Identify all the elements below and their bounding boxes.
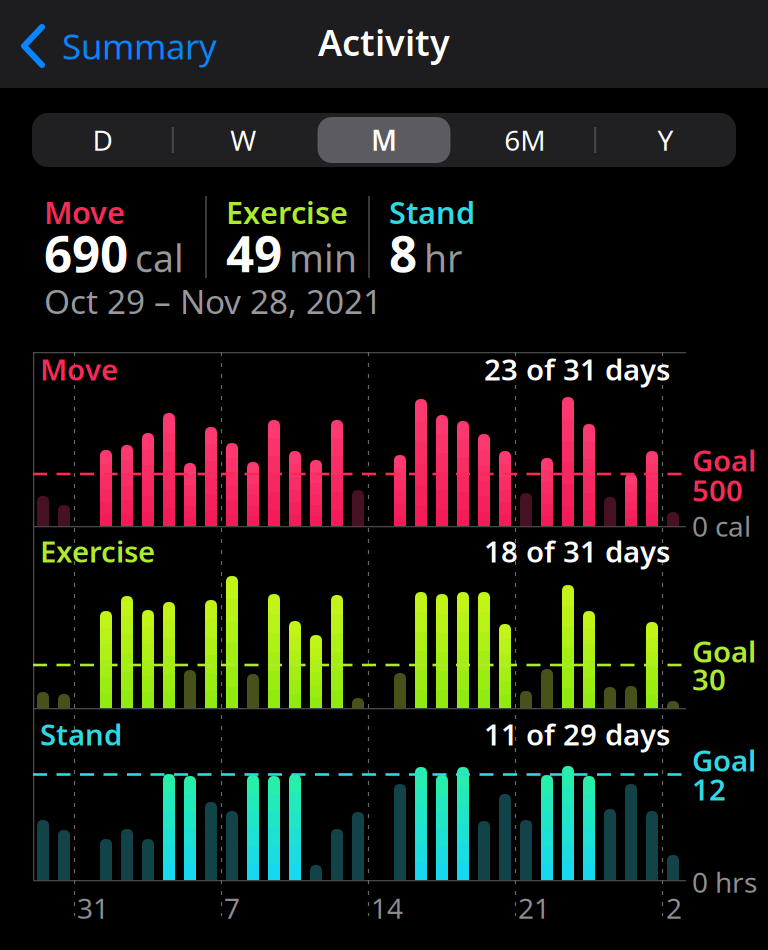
- staticText: 49: [226, 220, 282, 286]
- staticText: 11 of 29 days: [484, 714, 670, 753]
- button[interactable]: W: [173, 113, 314, 167]
- staticText: Summary: [62, 23, 217, 69]
- staticText: Move: [40, 349, 118, 388]
- staticText: hr: [424, 233, 462, 282]
- staticText: Move: [44, 192, 125, 232]
- staticText: Exercise: [40, 531, 155, 570]
- staticText: 30: [692, 659, 726, 698]
- button[interactable]: Back to Summary: [20, 2, 217, 90]
- staticText: 0 cal: [692, 507, 751, 545]
- staticText: Goal: [692, 440, 756, 479]
- staticText: 2: [666, 889, 682, 927]
- staticText: Oct 29 – Nov 28, 2021: [44, 279, 382, 323]
- staticText: 0 hrs: [692, 863, 757, 901]
- staticText: Activity: [318, 18, 450, 66]
- button[interactable]: Y: [595, 113, 736, 167]
- staticText: 7: [224, 889, 240, 927]
- staticText: Stand: [40, 714, 122, 753]
- staticText: min: [289, 233, 357, 282]
- staticText: 31: [77, 889, 109, 927]
- staticText: 14: [371, 889, 403, 927]
- staticText: D: [92, 121, 112, 159]
- staticText: Y: [658, 121, 674, 159]
- staticText: 8: [389, 220, 417, 286]
- button[interactable]: 6M: [454, 113, 595, 167]
- staticText: 500: [692, 470, 743, 509]
- staticText: 18 of 31 days: [484, 531, 670, 570]
- staticText: Stand: [389, 192, 475, 232]
- button[interactable]: D: [32, 113, 173, 167]
- staticText: Goal: [692, 740, 756, 779]
- staticText: W: [230, 121, 256, 159]
- staticText: 23 of 31 days: [484, 349, 670, 388]
- button[interactable]: M: [314, 113, 454, 167]
- staticText: Exercise: [226, 192, 348, 232]
- staticText: 12: [692, 769, 726, 808]
- staticText: cal: [135, 233, 184, 282]
- staticText: 6M: [504, 121, 545, 159]
- staticText: 21: [518, 889, 550, 927]
- staticText: 690: [44, 220, 128, 286]
- staticText: Goal: [692, 631, 756, 670]
- staticText: M: [371, 121, 397, 159]
